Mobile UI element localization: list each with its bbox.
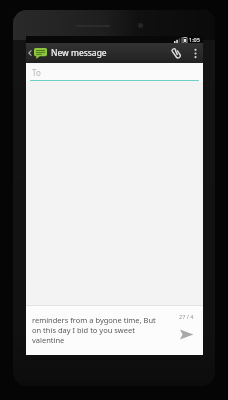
button[interactable]: Attach <box>165 43 187 63</box>
button[interactable]: reminders from a bygone time, But on thi… <box>26 306 169 345</box>
staticText: To <box>32 67 41 78</box>
button[interactable]: Send <box>172 324 200 344</box>
staticText: New message <box>51 47 107 59</box>
staticText: 27 / 4 <box>179 313 194 320</box>
button[interactable]: Navigate up <box>26 47 111 59</box>
staticText: reminders from a bygone time, But on thi… <box>32 315 166 345</box>
button[interactable]: More options <box>187 43 203 63</box>
button[interactable]: To <box>26 63 203 81</box>
staticText: 1:05 <box>189 36 200 43</box>
